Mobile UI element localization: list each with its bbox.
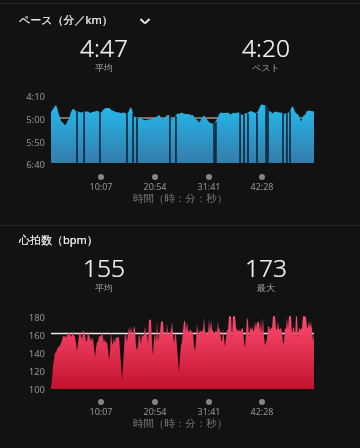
staticText: 42:28 [232,180,292,192]
staticText: 平均 [54,282,154,293]
staticText: 155 [54,251,154,284]
staticText: 平均 [54,62,154,73]
staticText: 20:54 [125,405,185,417]
staticText: 10:07 [71,405,131,417]
staticText: 20:54 [125,180,185,192]
staticText: 最大 [216,282,316,293]
staticText: ベスト [216,62,316,73]
staticText: 31:41 [179,405,239,417]
staticText: 173 [216,251,316,284]
staticText: 120 [18,365,45,378]
other: Change metric [139,15,151,27]
staticText: ペース（分／km） [19,12,113,27]
staticText: 180 [18,311,45,324]
staticText: 31:41 [179,180,239,192]
staticText: 100 [18,383,45,396]
staticText: 140 [18,347,45,360]
button[interactable]: 心拍数（bpm） [12,228,152,252]
staticText: 心拍数（bpm） [19,232,98,247]
staticText: 時間（時：分：秒） [0,417,360,430]
staticText: 5:50 [18,136,45,149]
staticText: 4:47 [54,31,154,64]
staticText: 42:28 [232,405,292,417]
staticText: 時間（時：分：秒） [0,192,360,205]
staticText: 5:00 [18,113,45,126]
staticText: 6:40 [18,158,45,171]
staticText: 4:20 [216,31,316,64]
staticText: 10:07 [71,180,131,192]
button[interactable]: ペース（分／km） [12,8,174,32]
staticText: 160 [18,329,45,342]
staticText: 4:10 [18,90,45,103]
